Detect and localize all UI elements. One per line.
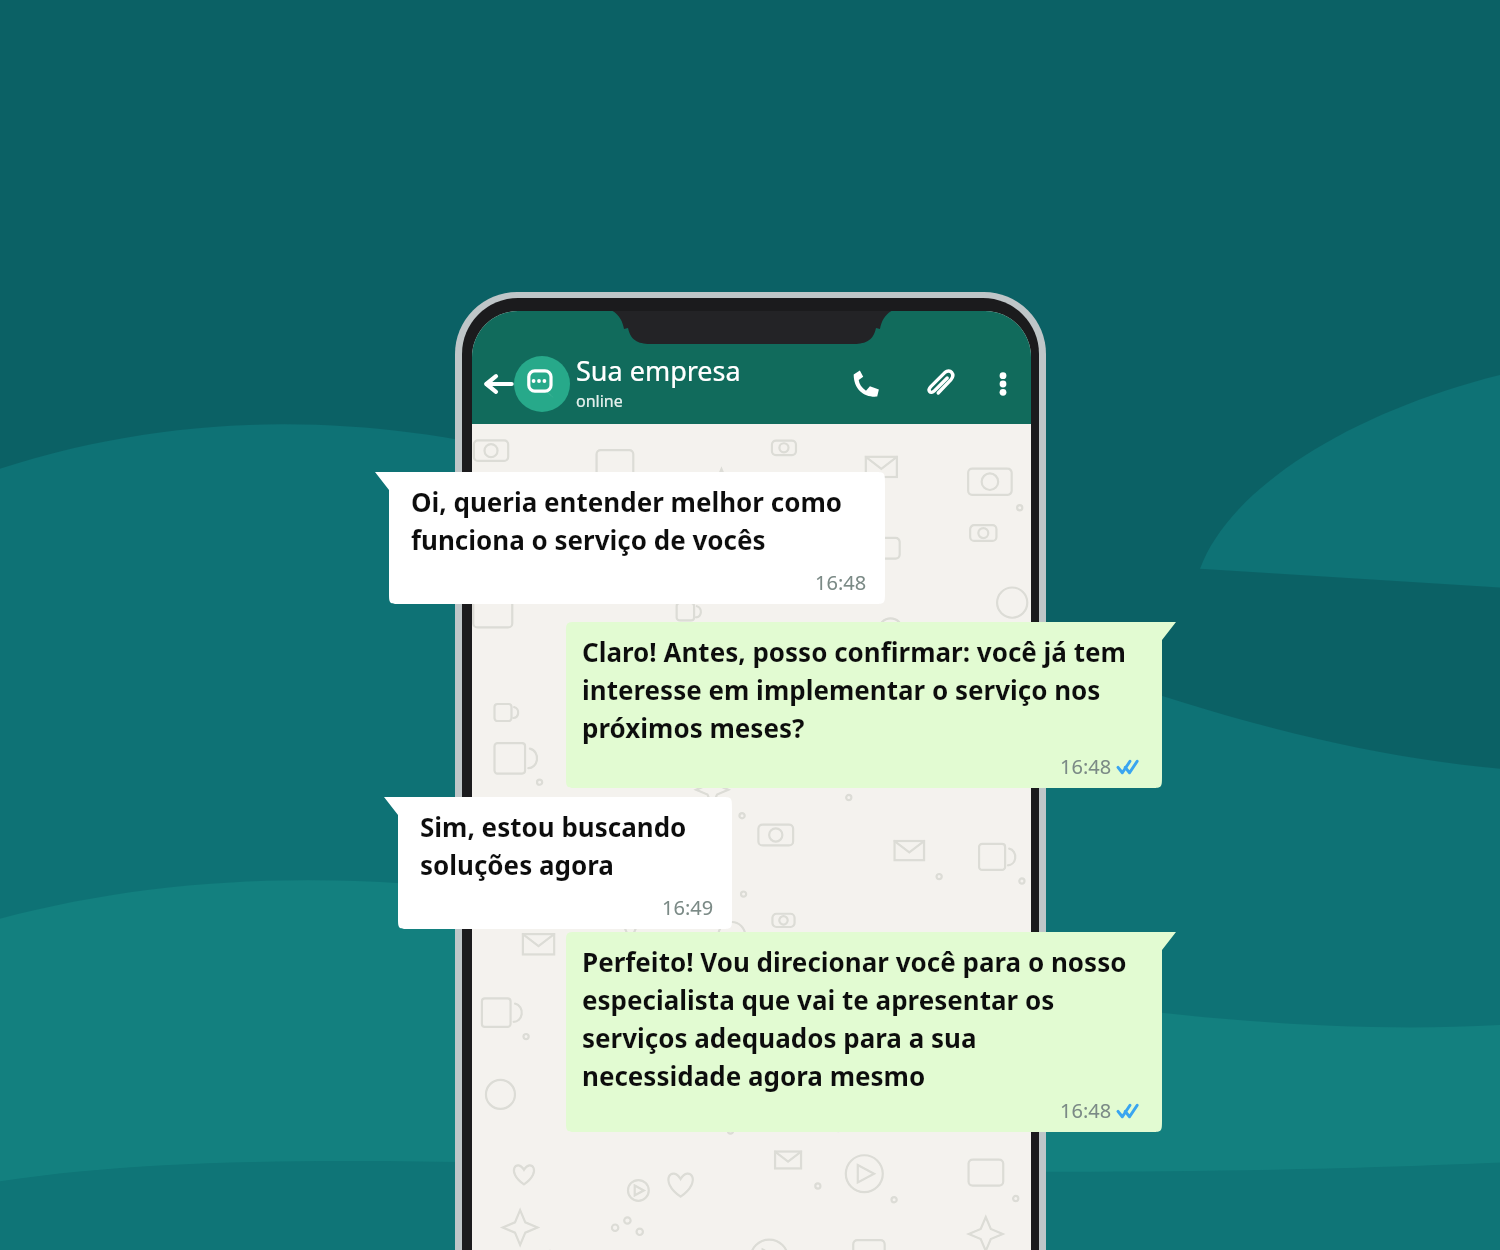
- button[interactable]: [514, 356, 570, 412]
- button[interactable]: Claro! Antes, posso confirmar: você já t…: [566, 622, 1176, 788]
- staticText: funciona o serviço de vocês: [411, 522, 766, 557]
- staticText: 16:48: [815, 569, 867, 596]
- staticText: 16:48: [1060, 1097, 1112, 1124]
- button[interactable]: More options: [980, 361, 1026, 407]
- staticText: 16:49: [662, 894, 714, 921]
- button[interactable]: Sua empresa: [576, 352, 741, 412]
- staticText: Sua empresa: [576, 352, 741, 389]
- button[interactable]: Call: [840, 358, 892, 410]
- staticText: Sim, estou buscando: [420, 809, 687, 844]
- staticText: próximos meses?: [582, 710, 805, 745]
- button[interactable]: Perfeito! Vou direcionar você para o nos…: [566, 932, 1176, 1132]
- staticText: Perfeito! Vou direcionar você para o nos…: [582, 944, 1127, 979]
- button[interactable]: Sim, estou buscando: [384, 797, 732, 929]
- staticText: Claro! Antes, posso confirmar: você já t…: [582, 634, 1126, 669]
- button[interactable]: Attach: [914, 358, 966, 410]
- staticText: 16:48: [1060, 753, 1112, 780]
- staticText: soluções agora: [420, 847, 614, 882]
- staticText: especialista que vai te apresentar os: [582, 982, 1055, 1017]
- staticText: interesse em implementar o serviço nos: [582, 672, 1101, 707]
- button[interactable]: Oi, queria entender melhor como: [375, 472, 885, 604]
- staticText: necessidade agora mesmo: [582, 1058, 926, 1093]
- staticText: online: [576, 390, 623, 412]
- staticText: Oi, queria entender melhor como: [411, 484, 842, 519]
- staticText: serviços adequados para a sua: [582, 1020, 977, 1055]
- button[interactable]: Back: [476, 361, 522, 407]
